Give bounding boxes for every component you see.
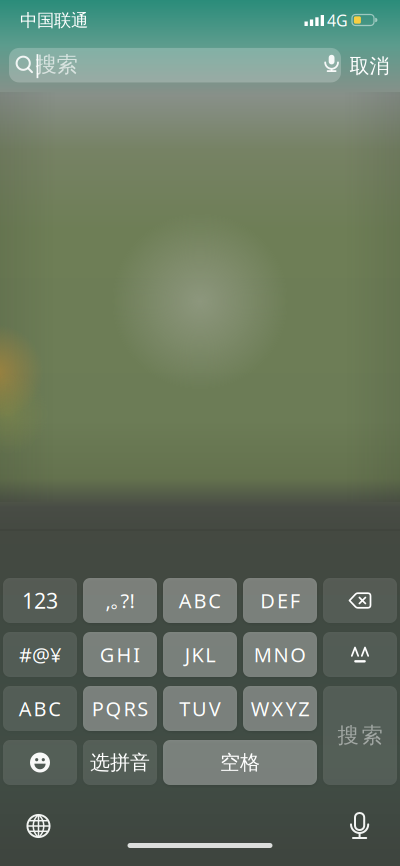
staticText: PQRS [92,695,148,722]
staticText: 搜索 [35,51,77,78]
button[interactable]: 表情 [3,740,77,785]
button[interactable]: 听写 [325,54,339,72]
button[interactable]: ,｡?! [83,578,157,623]
staticText: 取消 [349,54,389,78]
button[interactable]: JKL [163,632,237,677]
staticText: WXYZ [251,695,309,722]
staticText: DEF [260,587,300,614]
button[interactable]: 选拼音 [83,740,157,785]
staticText: TUV [179,695,221,722]
staticText: ABC [19,695,61,722]
staticText: 搜索 [337,722,382,749]
button[interactable]: TUV [163,686,237,731]
button[interactable]: 删除 [323,578,397,623]
button[interactable]: 搜索 [9,48,341,82]
button[interactable]: 下一个键盘 [21,809,55,843]
button[interactable]: DEF [243,578,317,623]
button[interactable]: ABC [3,686,77,731]
button[interactable]: 听写 [347,809,373,843]
staticText: ,｡?! [105,587,134,614]
staticText: 中国联通 [20,10,88,31]
staticText: #@¥ [19,641,61,668]
button[interactable]: MNO [243,632,317,677]
staticText: 空格 [220,750,260,775]
button[interactable]: GHI [83,632,157,677]
button[interactable]: 搜索 [323,686,397,785]
staticText: JKL [185,641,215,668]
staticText: 4G [327,10,348,31]
button[interactable]: 取消 [349,54,389,78]
staticText: 选拼音 [90,750,150,775]
staticText: MNO [254,641,306,668]
button[interactable]: ABC [163,578,237,623]
button[interactable]: #@¥ [3,632,77,677]
button[interactable]: 颜文字 [323,632,397,677]
button[interactable]: PQRS [83,686,157,731]
button[interactable]: 123 [3,578,77,623]
button[interactable]: WXYZ [243,686,317,731]
staticText: 123 [22,586,58,615]
staticText: GHI [100,641,140,668]
staticText: ABC [179,587,221,614]
button[interactable]: 空格 [163,740,317,785]
